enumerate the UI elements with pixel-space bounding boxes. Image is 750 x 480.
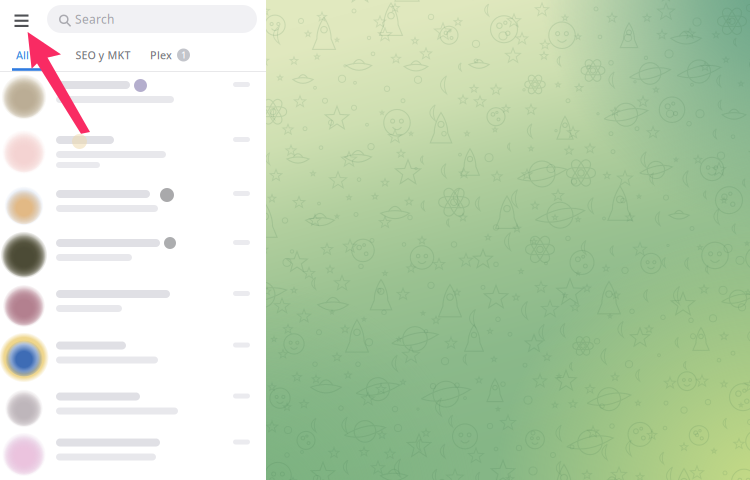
button[interactable]: SEO y MKT <box>68 40 138 70</box>
button[interactable] <box>0 185 266 235</box>
button[interactable] <box>0 339 266 390</box>
button[interactable] <box>0 390 266 441</box>
button[interactable] <box>0 287 266 339</box>
button[interactable] <box>0 441 266 480</box>
button[interactable] <box>0 127 266 185</box>
staticText: Search <box>75 11 114 27</box>
staticText: SEO y MKT <box>75 48 130 62</box>
staticText: 1 <box>181 49 186 61</box>
button[interactable]: Menu <box>7 5 35 33</box>
button[interactable]: Plex <box>144 40 196 70</box>
staticText: Plex <box>150 48 172 62</box>
button[interactable] <box>0 235 266 287</box>
button[interactable] <box>0 75 266 127</box>
button[interactable]: Search <box>47 5 257 33</box>
button[interactable]: All <box>0 40 45 70</box>
staticText: All <box>16 48 29 62</box>
